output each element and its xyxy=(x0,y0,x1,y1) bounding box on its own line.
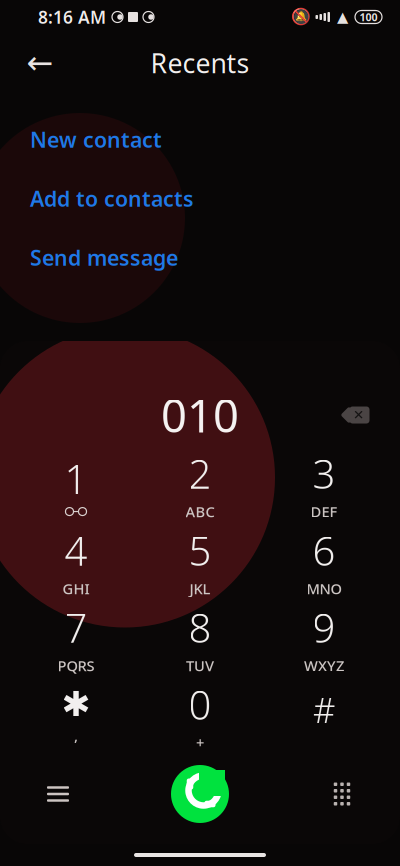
staticText: 3 xyxy=(312,447,335,500)
button[interactable]: 9 xyxy=(262,605,386,671)
button[interactable]: 8 xyxy=(138,605,262,671)
staticText: 7 xyxy=(64,601,87,654)
staticText: GHI xyxy=(62,579,89,598)
button[interactable]: 1 xyxy=(14,451,138,517)
staticText: ▲ xyxy=(337,9,348,25)
staticText: 2 xyxy=(188,447,211,500)
staticText: Send message xyxy=(30,243,178,272)
staticText: WXYZ xyxy=(304,656,344,675)
button[interactable]: # xyxy=(262,682,386,748)
staticText: ✱ xyxy=(61,685,90,724)
staticText: 8 xyxy=(188,601,211,654)
staticText: 5 xyxy=(188,524,211,577)
staticText: , xyxy=(74,726,78,745)
button[interactable]: Delete xyxy=(328,393,384,437)
button[interactable]: Send message xyxy=(0,228,400,287)
staticText: 8:16 AM xyxy=(38,5,106,28)
staticText: 9 xyxy=(312,601,335,654)
button[interactable]: Hide keypad xyxy=(302,764,382,824)
staticText: New contact xyxy=(30,125,162,154)
staticText: MNO xyxy=(306,579,341,598)
staticText: 4 xyxy=(64,524,87,577)
button[interactable]: 6 xyxy=(262,528,386,594)
staticText: 1 xyxy=(64,452,87,505)
button[interactable]: 4 xyxy=(14,528,138,594)
staticText: 010 xyxy=(161,385,239,445)
button[interactable]: Back xyxy=(18,41,62,85)
staticText: 🔕 xyxy=(291,8,311,26)
staticText: ABC xyxy=(185,502,214,521)
staticText: # xyxy=(313,686,335,732)
button[interactable]: 0 xyxy=(138,682,262,748)
button[interactable]: Call xyxy=(164,758,236,830)
button[interactable]: 5 xyxy=(138,528,262,594)
staticText: ✕ xyxy=(353,407,364,422)
staticText: + xyxy=(196,733,204,752)
staticText: 100 xyxy=(359,10,377,24)
staticText: ← xyxy=(26,45,53,81)
staticText: DEF xyxy=(310,502,337,521)
staticText: Add to contacts xyxy=(30,184,194,213)
button[interactable]: 3 xyxy=(262,451,386,517)
staticText: JKL xyxy=(189,579,210,598)
button[interactable]: 7 xyxy=(14,605,138,671)
staticText: 0 xyxy=(188,678,211,731)
staticText: PQRS xyxy=(57,656,94,675)
staticText: TUV xyxy=(186,656,214,675)
staticText: Recents xyxy=(150,45,249,81)
button[interactable]: New contact xyxy=(0,110,400,169)
button[interactable]: Add to contacts xyxy=(0,169,400,228)
button[interactable]: More options xyxy=(18,764,98,824)
button[interactable]: 2 xyxy=(138,451,262,517)
staticText: 6 xyxy=(312,524,335,577)
button[interactable]: ✱ xyxy=(14,682,138,748)
